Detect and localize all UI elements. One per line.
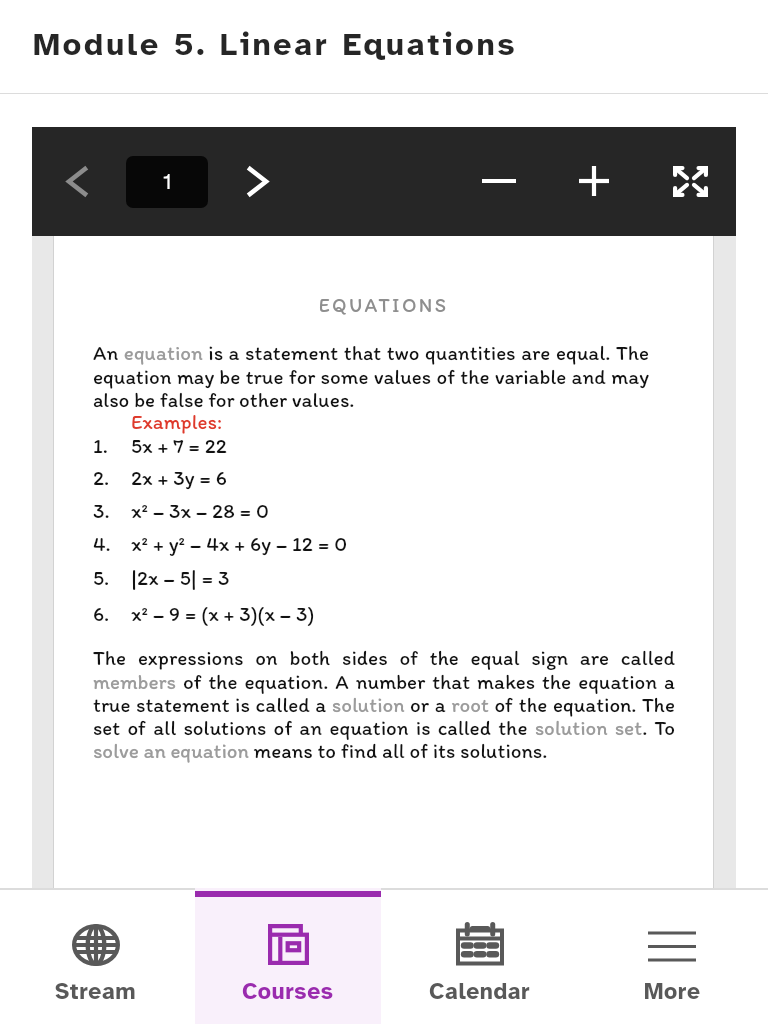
button[interactable]: Courses	[192, 888, 384, 1024]
button[interactable]: Calendar	[384, 888, 576, 1024]
button[interactable]: Previous page	[53, 157, 101, 205]
button[interactable]: Next page	[234, 157, 282, 205]
button[interactable]: Stream	[0, 888, 192, 1024]
staticText: x² + y² – 4x + 6y – 12 = 0	[131, 531, 348, 556]
staticText: 5x + 7 = 22	[131, 433, 227, 458]
staticText: EQUATIONS	[53, 293, 714, 317]
staticText: Module 5. Linear Equations	[33, 25, 518, 65]
staticText: 3.	[93, 498, 110, 523]
staticText: 5.	[93, 565, 110, 590]
button[interactable]: Full screen	[662, 153, 718, 209]
staticText: Courses	[242, 977, 334, 1006]
staticText: Calendar	[429, 977, 531, 1006]
button[interactable]: Zoom in	[566, 153, 622, 209]
staticText: |2x – 5| = 3	[131, 565, 230, 590]
staticText: Examples:	[131, 409, 223, 434]
staticText: 6.	[93, 601, 110, 626]
button[interactable]: More	[576, 888, 768, 1024]
staticText: 2.	[93, 465, 110, 490]
staticText: More	[644, 977, 701, 1006]
button[interactable]: Zoom out	[471, 153, 527, 209]
staticText: 1	[163, 169, 172, 195]
button[interactable]: 1	[126, 156, 208, 208]
staticText: x² – 3x – 28 = 0	[131, 498, 269, 523]
staticText: The expressions on both sides of the equ…	[93, 645, 675, 763]
staticText: 4.	[93, 531, 111, 556]
staticText: An equation is a statement that two quan…	[93, 340, 649, 412]
staticText: 2x + 3y = 6	[131, 465, 227, 490]
staticText: 1.	[93, 433, 108, 458]
staticText: Stream	[55, 977, 137, 1006]
staticText: x² – 9 = (x + 3)(x – 3)	[131, 601, 315, 626]
